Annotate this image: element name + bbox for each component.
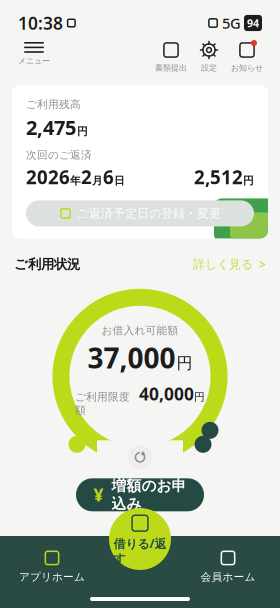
- staticText: お知らせ: [231, 63, 263, 73]
- staticText: 増額のお申込み: [111, 477, 186, 513]
- button[interactable]: ご返済予定日の登録・変更: [26, 200, 254, 226]
- staticText: 会員ホーム: [200, 570, 255, 584]
- staticText: ご返済予定日の登録・変更: [77, 206, 221, 221]
- staticText: ご利用残高: [26, 98, 81, 111]
- staticText: アプリホーム: [19, 570, 85, 584]
- staticText: メニュー: [18, 56, 50, 66]
- button[interactable]: 書類提出: [152, 38, 190, 75]
- staticText: 円: [194, 390, 205, 403]
- staticText: 10:38: [18, 11, 63, 34]
- button[interactable]: 詳しく見る: [193, 252, 266, 276]
- staticText: 2026: [26, 165, 70, 189]
- staticText: 詳しく見る: [193, 257, 253, 272]
- staticText: 円: [176, 353, 192, 373]
- button[interactable]: お知らせ: [228, 38, 266, 75]
- staticText: 次回のご返済: [26, 148, 92, 162]
- staticText: 円: [243, 174, 254, 187]
- button[interactable]: メニュー: [14, 38, 54, 70]
- staticText: ご利用状況: [14, 256, 80, 273]
- button[interactable]: 設定: [190, 38, 228, 75]
- staticText: お借入れ可能額: [101, 324, 178, 337]
- staticText: 月: [92, 174, 103, 187]
- staticText: 94: [247, 16, 259, 30]
- button[interactable]: 会員ホーム: [182, 544, 274, 588]
- staticText: 2,475: [26, 114, 76, 140]
- staticText: 書類提出: [155, 63, 187, 73]
- button[interactable]: アプリホーム: [6, 544, 98, 588]
- button[interactable]: ¥: [76, 478, 204, 511]
- staticText: 日: [114, 174, 125, 187]
- staticText: 年: [70, 174, 81, 187]
- button[interactable]: 借りる/返す: [109, 508, 171, 570]
- staticText: ¥: [93, 483, 103, 506]
- staticText: 40,000: [139, 382, 194, 405]
- staticText: 6: [103, 165, 114, 189]
- staticText: 2,512: [194, 165, 243, 189]
- button[interactable]: 更新: [128, 445, 152, 469]
- staticText: 2: [81, 165, 92, 189]
- staticText: 37,000: [87, 339, 175, 376]
- staticText: >: [259, 256, 266, 272]
- staticText: 5G: [222, 13, 241, 33]
- staticText: 設定: [201, 63, 217, 73]
- staticText: 借りる/返す: [113, 535, 166, 566]
- staticText: ご利用限度額: [75, 390, 130, 417]
- staticText: 円: [77, 125, 88, 138]
